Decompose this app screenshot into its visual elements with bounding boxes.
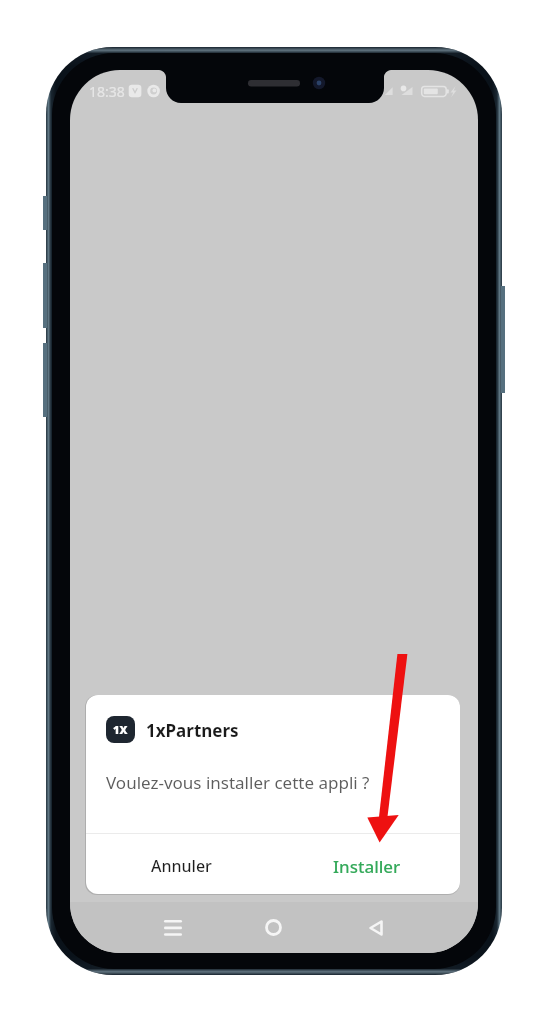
staticText: Annuler — [151, 855, 212, 877]
staticText: Voulez-vous installer cette appli ? — [106, 771, 370, 794]
staticText: Installer — [333, 855, 401, 878]
staticText: 18:38 — [89, 82, 125, 101]
button[interactable]: Back — [353, 905, 398, 950]
staticText: 1xPartners — [146, 719, 239, 742]
button[interactable]: Recent apps — [150, 905, 195, 950]
button[interactable]: Annuler — [128, 834, 234, 894]
button[interactable]: Home — [251, 905, 296, 950]
staticText: 1X — [113, 722, 128, 737]
button[interactable]: Installer — [314, 834, 420, 894]
